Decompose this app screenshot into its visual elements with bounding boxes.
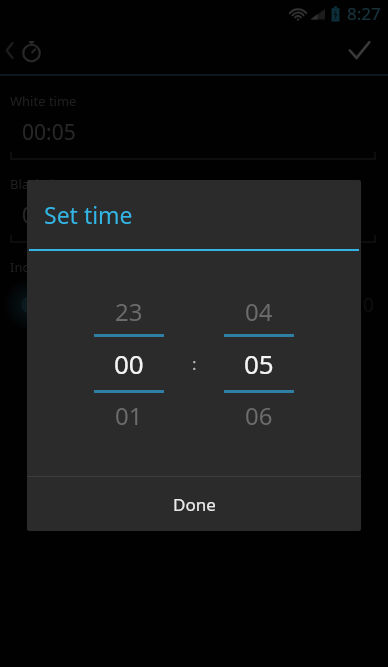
- staticText: 0: [363, 292, 374, 318]
- staticText: Black time: [10, 175, 74, 193]
- button[interactable]: 00:05: [10, 201, 376, 244]
- staticText: 23: [115, 295, 143, 328]
- staticText: 05: [244, 346, 274, 381]
- staticText: 8:27: [347, 2, 381, 25]
- staticText: Done: [173, 493, 216, 516]
- staticText: Increment: [10, 258, 74, 276]
- button[interactable]: 00:05: [10, 118, 376, 161]
- staticText: 00:05: [22, 201, 76, 230]
- button[interactable]: Confirm: [330, 26, 388, 74]
- button[interactable]: 0: [0, 276, 388, 334]
- staticText: Set time: [44, 199, 133, 230]
- staticText: 01: [115, 399, 143, 432]
- staticText: White time: [10, 92, 77, 110]
- button[interactable]: 04: [216, 289, 302, 438]
- staticText: 00:05: [22, 118, 76, 147]
- button[interactable]: Navigate up: [5, 26, 44, 74]
- staticText: 00: [114, 346, 144, 381]
- button[interactable]: 23: [86, 289, 172, 438]
- button[interactable]: Done: [27, 477, 361, 531]
- staticText: :: [192, 352, 197, 375]
- staticText: 06: [245, 399, 273, 432]
- staticText: 04: [245, 295, 273, 328]
